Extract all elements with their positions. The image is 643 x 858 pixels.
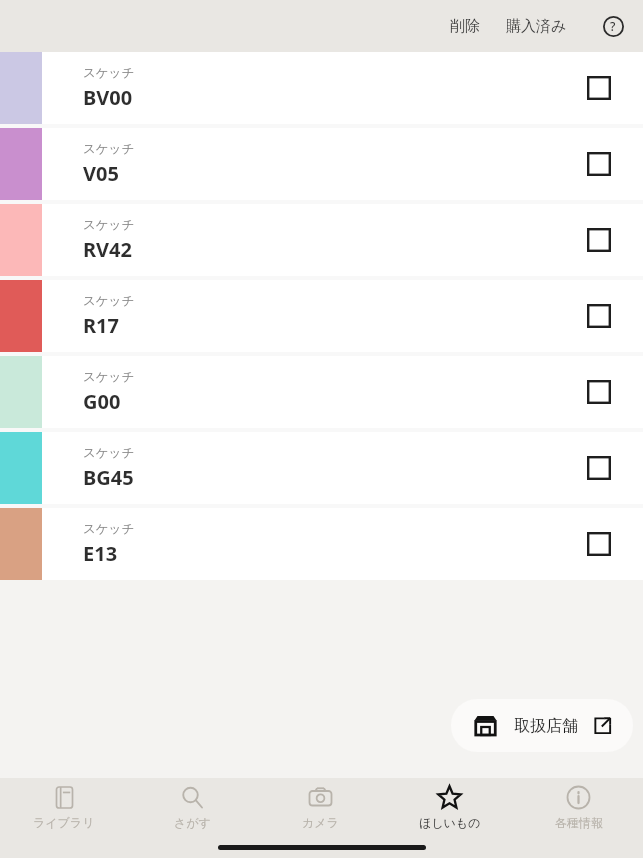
staticText: スケッチ — [83, 369, 135, 385]
staticText: さがす — [174, 815, 211, 830]
button[interactable]: Select E13 — [555, 508, 643, 580]
button[interactable]: スケッチ — [0, 432, 643, 504]
button[interactable]: Select V05 — [555, 128, 643, 200]
button[interactable]: Help — [595, 8, 631, 44]
staticText: スケッチ — [83, 445, 135, 461]
button[interactable]: カメラ — [256, 778, 385, 836]
button[interactable]: Select BV00 — [555, 52, 643, 124]
button[interactable]: 削除 — [440, 9, 490, 44]
staticText: V05 — [83, 160, 119, 187]
staticText: ? — [610, 18, 616, 34]
button[interactable]: 取扱店舗 — [451, 699, 633, 752]
staticText: 購入済み — [506, 17, 567, 36]
staticText: E13 — [83, 540, 118, 567]
button[interactable]: ライブラリ — [0, 778, 128, 836]
button[interactable]: ほしいもの — [385, 778, 514, 836]
button[interactable]: Select R17 — [555, 280, 643, 352]
staticText: 取扱店舗 — [514, 716, 578, 736]
button[interactable]: スケッチ — [0, 52, 643, 124]
staticText: スケッチ — [83, 521, 135, 537]
staticText: G00 — [83, 388, 121, 415]
staticText: カメラ — [302, 815, 339, 830]
staticText: スケッチ — [83, 293, 135, 309]
button[interactable]: スケッチ — [0, 280, 643, 352]
staticText: ほしいもの — [419, 815, 481, 830]
button[interactable]: Select RV42 — [555, 204, 643, 276]
staticText: スケッチ — [83, 65, 135, 81]
button[interactable]: スケッチ — [0, 204, 643, 276]
staticText: 削除 — [450, 17, 480, 36]
button[interactable]: スケッチ — [0, 356, 643, 428]
button[interactable]: さがす — [128, 778, 256, 836]
button[interactable]: スケッチ — [0, 508, 643, 580]
staticText: スケッチ — [83, 217, 135, 233]
button[interactable]: Select BG45 — [555, 432, 643, 504]
staticText: BG45 — [83, 464, 134, 491]
staticText: RV42 — [83, 236, 132, 263]
button[interactable]: 購入済み — [496, 9, 577, 44]
staticText: R17 — [83, 312, 119, 339]
button[interactable]: 各種情報 — [514, 778, 643, 836]
staticText: スケッチ — [83, 141, 135, 157]
button[interactable]: Select G00 — [555, 356, 643, 428]
staticText: BV00 — [83, 84, 133, 111]
staticText: ライブラリ — [33, 815, 95, 830]
staticText: 各種情報 — [555, 815, 603, 830]
button[interactable]: スケッチ — [0, 128, 643, 200]
